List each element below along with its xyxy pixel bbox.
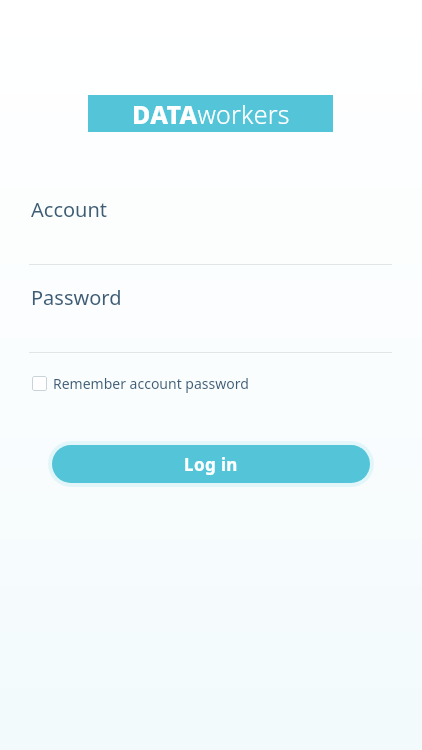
- staticText: Password: [31, 284, 122, 311]
- button[interactable]: Log in: [52, 445, 370, 483]
- button[interactable]: Password: [0, 284, 422, 353]
- button[interactable]: DATAworkers: [88, 95, 333, 132]
- button[interactable]: Remember account password: [32, 372, 257, 395]
- staticText: Remember account password: [53, 374, 249, 393]
- staticText: DATAworkers: [132, 97, 290, 131]
- staticText: Account: [31, 196, 108, 223]
- staticText: Log in: [184, 453, 238, 476]
- button[interactable]: Account: [0, 196, 422, 265]
